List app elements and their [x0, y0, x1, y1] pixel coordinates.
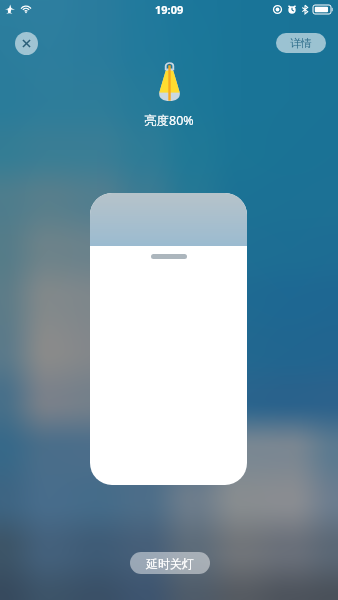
button[interactable]: 详情: [276, 33, 326, 53]
staticText: 19:09: [155, 2, 184, 17]
button[interactable]: Close: [15, 32, 38, 55]
staticText: 详情: [290, 36, 312, 50]
staticText: 亮度80%: [144, 112, 194, 129]
staticText: 延时关灯: [146, 556, 194, 571]
button[interactable]: 延时关灯: [130, 552, 210, 574]
